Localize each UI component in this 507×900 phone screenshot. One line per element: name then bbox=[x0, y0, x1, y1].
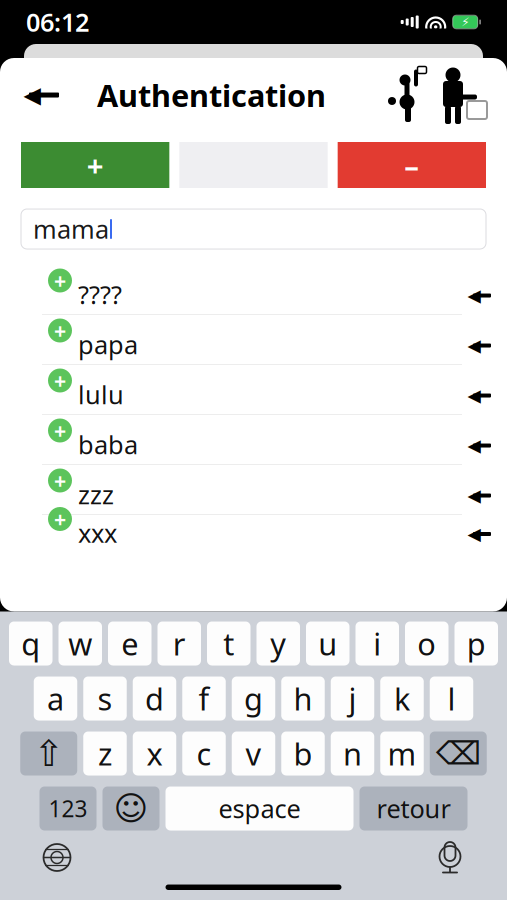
button[interactable]: q bbox=[9, 621, 52, 665]
staticText: a bbox=[47, 678, 64, 719]
button[interactable]: People bbox=[381, 67, 491, 123]
staticText: n bbox=[343, 733, 362, 774]
staticText: ◀ bbox=[467, 436, 480, 455]
button[interactable]: espace bbox=[165, 786, 353, 830]
staticText: ⇧ bbox=[34, 733, 64, 774]
button[interactable]: b bbox=[281, 731, 325, 775]
staticText: c bbox=[196, 733, 211, 774]
staticText: ◀ bbox=[467, 286, 480, 305]
button[interactable]: + bbox=[0, 265, 507, 315]
button[interactable]: h bbox=[281, 676, 325, 720]
staticText: o bbox=[417, 623, 436, 664]
staticText: r bbox=[173, 623, 186, 664]
button[interactable]: t bbox=[207, 621, 250, 665]
button[interactable]: + bbox=[21, 142, 169, 188]
staticText: ◀ bbox=[467, 336, 480, 355]
staticText: + bbox=[54, 505, 66, 533]
staticText: lulu bbox=[78, 378, 124, 411]
button[interactable]: e bbox=[108, 621, 151, 665]
staticText: papa bbox=[78, 328, 138, 361]
button[interactable]: Back bbox=[16, 70, 72, 120]
staticText: s bbox=[97, 678, 112, 719]
button[interactable]: l bbox=[430, 676, 473, 720]
button[interactable]: p bbox=[454, 621, 498, 665]
staticText: f bbox=[198, 678, 209, 719]
staticText: – bbox=[404, 145, 419, 184]
staticText: ⚡︎ bbox=[461, 15, 469, 29]
staticText: ◀ bbox=[467, 486, 480, 505]
staticText: retour bbox=[376, 792, 450, 825]
staticText: i bbox=[373, 623, 381, 664]
button[interactable]: s bbox=[83, 676, 127, 720]
staticText: ⌫ bbox=[436, 735, 481, 772]
button[interactable]: g bbox=[232, 676, 275, 720]
button[interactable]: + bbox=[0, 315, 507, 365]
button[interactable]: w bbox=[58, 621, 102, 665]
staticText: k bbox=[394, 678, 410, 719]
staticText: d bbox=[145, 678, 164, 719]
staticText: baba bbox=[78, 428, 138, 461]
staticText: zzz bbox=[78, 478, 114, 511]
staticText: Authentication bbox=[97, 75, 326, 115]
staticText: ???? bbox=[78, 278, 122, 311]
staticText: + bbox=[54, 416, 66, 445]
button[interactable]: Emoji bbox=[102, 786, 159, 830]
staticText: espace bbox=[218, 792, 300, 825]
staticText: ◀ bbox=[467, 524, 480, 544]
button[interactable]: + bbox=[0, 365, 507, 415]
staticText: b bbox=[293, 733, 312, 774]
button[interactable]: c bbox=[182, 731, 226, 775]
staticText: e bbox=[121, 623, 138, 664]
staticText: p bbox=[467, 623, 486, 664]
button[interactable]: v bbox=[232, 731, 275, 775]
staticText: m bbox=[387, 733, 416, 774]
button[interactable]: n bbox=[331, 731, 374, 775]
button[interactable]: u bbox=[306, 621, 349, 665]
staticText: h bbox=[293, 678, 312, 719]
staticText: j bbox=[348, 678, 356, 719]
button[interactable]: Dictation bbox=[423, 834, 477, 880]
staticText: + bbox=[54, 266, 66, 295]
staticText: x bbox=[146, 733, 162, 774]
button[interactable]: Next keyboard bbox=[30, 834, 84, 880]
staticText: l bbox=[447, 678, 455, 719]
staticText: q bbox=[21, 623, 40, 664]
button[interactable]: m bbox=[380, 731, 424, 775]
button[interactable]: Shift bbox=[20, 731, 77, 775]
button[interactable]: f bbox=[182, 676, 226, 720]
staticText: + bbox=[54, 466, 66, 495]
button[interactable]: + bbox=[0, 415, 507, 465]
button[interactable]: k bbox=[380, 676, 424, 720]
staticText: t bbox=[223, 623, 234, 664]
button[interactable]: j bbox=[331, 676, 374, 720]
button[interactable]: Search field bbox=[21, 209, 486, 249]
button[interactable]: + bbox=[0, 465, 507, 515]
button[interactable]: retour bbox=[359, 786, 467, 830]
button[interactable]: Delete bbox=[430, 731, 487, 775]
staticText: z bbox=[98, 733, 112, 774]
button[interactable]: o bbox=[405, 621, 448, 665]
staticText: w bbox=[68, 623, 92, 664]
button[interactable]: d bbox=[133, 676, 176, 720]
button[interactable]: 123 bbox=[39, 786, 96, 830]
staticText: mama bbox=[33, 212, 109, 246]
button[interactable]: y bbox=[256, 621, 300, 665]
staticText: v bbox=[245, 733, 261, 774]
staticText: 06:12 bbox=[26, 5, 89, 39]
staticText: + bbox=[87, 145, 104, 184]
button[interactable]: a bbox=[34, 676, 77, 720]
staticText: g bbox=[244, 678, 263, 719]
button[interactable]: r bbox=[157, 621, 201, 665]
staticText: ☺ bbox=[113, 790, 148, 827]
staticText: 123 bbox=[48, 793, 87, 823]
button[interactable]: + bbox=[0, 515, 507, 541]
staticText: u bbox=[318, 623, 337, 664]
button[interactable]: z bbox=[83, 731, 127, 775]
button[interactable]: x bbox=[133, 731, 176, 775]
staticText: y bbox=[270, 623, 286, 664]
staticText: + bbox=[54, 316, 66, 345]
button[interactable]: – bbox=[338, 142, 486, 188]
staticText: ◀ bbox=[467, 386, 480, 405]
button[interactable]: i bbox=[355, 621, 399, 665]
